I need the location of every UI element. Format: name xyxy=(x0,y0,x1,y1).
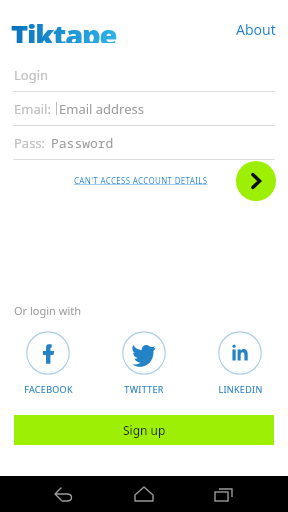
button[interactable]: Home xyxy=(126,476,162,512)
button[interactable]: TWITTER xyxy=(96,331,192,395)
staticText: Password xyxy=(51,134,114,152)
button[interactable]: Pass: xyxy=(0,126,288,160)
button[interactable]: CAN'T ACCESS ACCOUNT DETAILS xyxy=(74,175,208,186)
staticText: Tiktape xyxy=(11,15,117,43)
button[interactable]: FACEBOOK xyxy=(0,331,96,395)
staticText: Login xyxy=(14,66,49,84)
staticText: Or login with xyxy=(14,303,82,318)
staticText: Sign up xyxy=(123,422,166,438)
button[interactable]: Sign up xyxy=(14,415,274,445)
staticText: Email address xyxy=(59,100,144,118)
staticText: Pass: xyxy=(14,134,46,152)
staticText: CAN'T ACCESS ACCOUNT DETAILS xyxy=(74,175,208,186)
button[interactable]: Sign in xyxy=(236,161,276,201)
button[interactable]: Login xyxy=(0,58,288,92)
button[interactable]: Tiktape xyxy=(11,15,139,43)
button[interactable]: LINKEDIN xyxy=(192,331,288,395)
button[interactable]: About xyxy=(232,14,280,45)
staticText: About xyxy=(236,20,276,39)
staticText: Email: xyxy=(14,100,51,118)
staticText: LINKEDIN xyxy=(218,383,263,395)
button[interactable]: Recent apps xyxy=(206,476,242,512)
button[interactable]: Back xyxy=(45,476,81,512)
staticText: TWITTER xyxy=(124,383,164,395)
button[interactable]: Email: xyxy=(0,92,288,126)
staticText: FACEBOOK xyxy=(24,383,73,395)
